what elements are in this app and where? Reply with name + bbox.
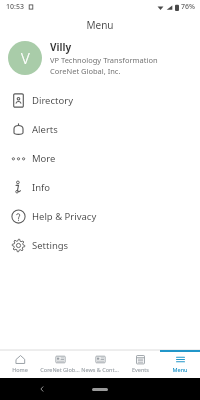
staticText: Events — [132, 366, 149, 373]
staticText: Home — [12, 366, 28, 373]
staticText: Settings — [32, 239, 69, 252]
staticText: 76% — [181, 2, 195, 12]
button[interactable]: Help & Privacy — [0, 202, 200, 231]
staticText: Info — [32, 181, 51, 194]
button[interactable]: V — [0, 36, 200, 80]
button[interactable]: Settings — [0, 231, 200, 260]
staticText: Alerts — [32, 123, 58, 136]
button[interactable]: Directory — [0, 86, 200, 115]
button[interactable]: Home — [0, 350, 40, 378]
staticText: CoreNet Global, Inc. — [50, 66, 121, 76]
other: Back — [38, 385, 46, 393]
button[interactable]: More — [0, 144, 200, 173]
other: Home — [92, 388, 108, 391]
button[interactable]: Menu — [160, 350, 200, 378]
button[interactable]: Alerts — [0, 115, 200, 144]
button[interactable]: News & Content — [80, 350, 120, 378]
staticText: 10:53 — [6, 2, 24, 12]
button[interactable]: Info — [0, 173, 200, 202]
staticText: Help & Privacy — [32, 210, 97, 223]
staticText: News & Content — [80, 366, 120, 373]
staticText: Villy — [50, 40, 72, 54]
staticText: VP Technology Transformation — [50, 55, 158, 65]
staticText: V — [21, 48, 30, 68]
staticText: Menu — [86, 18, 114, 32]
staticText: Menu — [172, 366, 188, 373]
staticText: CoreNet Glob... — [40, 366, 80, 373]
staticText: Directory — [32, 94, 73, 107]
button[interactable]: Events — [120, 350, 160, 378]
staticText: More — [32, 152, 56, 165]
button[interactable]: CoreNet Glob... — [40, 350, 80, 378]
